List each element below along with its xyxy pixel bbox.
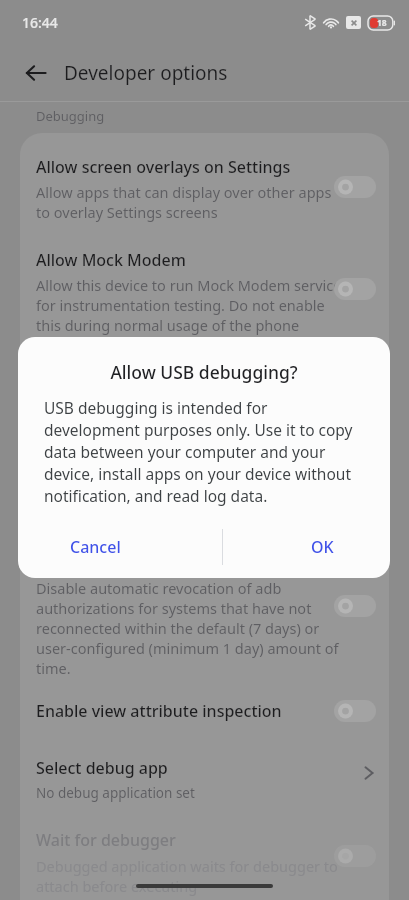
button[interactable]: Toggle xyxy=(334,176,376,198)
staticText: Disable automatic revocation of adb xyxy=(36,578,282,598)
staticText: 16:44 xyxy=(22,13,58,32)
button[interactable]: Toggle xyxy=(334,845,376,867)
button[interactable] xyxy=(20,688,389,734)
button[interactable]: Toggle xyxy=(334,278,376,300)
button[interactable]: Back xyxy=(14,51,58,95)
staticText: to overlay Settings screens xyxy=(36,202,218,222)
staticText: Allow this device to run Mock Modem serv… xyxy=(36,275,342,295)
staticText: 18 xyxy=(377,17,387,29)
staticText: for instrumentation testing. Do not enab… xyxy=(36,295,325,315)
button[interactable]: OK xyxy=(299,528,346,566)
button[interactable]: Toggle xyxy=(334,595,376,617)
button[interactable]: Cancel xyxy=(58,528,133,566)
staticText: reconnected within the default (7 days) … xyxy=(36,618,320,638)
staticText: Debugging xyxy=(36,107,105,125)
staticText: user-configured (minimum 1 day) amount o… xyxy=(36,638,339,658)
button[interactable] xyxy=(20,239,389,336)
staticText: Enable view attribute inspection xyxy=(36,700,282,722)
staticText: Cancel xyxy=(70,536,121,558)
staticText: Allow apps that can display over other a… xyxy=(36,182,332,202)
button[interactable]: Toggle xyxy=(334,700,376,722)
staticText: Debugged application waits for debugger … xyxy=(36,856,338,876)
staticText: Select debug app xyxy=(36,757,168,779)
staticText: Allow Mock Modem xyxy=(36,249,186,271)
staticText: Allow USB debugging? xyxy=(18,360,390,384)
staticText: authorizations for systems that have not xyxy=(36,598,312,618)
staticText: attach before executing xyxy=(36,876,198,896)
staticText: Developer options xyxy=(64,60,228,86)
staticText: Wait for debugger xyxy=(36,829,176,851)
staticText: Allow screen overlays on Settings xyxy=(36,156,291,178)
staticText: OK xyxy=(311,536,334,558)
button[interactable] xyxy=(20,146,389,222)
staticText: No debug application set xyxy=(36,784,195,802)
button[interactable] xyxy=(20,750,389,808)
staticText: USB debugging is intended for developmen… xyxy=(44,397,366,506)
staticText: time. xyxy=(36,658,71,678)
staticText: this during normal usage of the phone xyxy=(36,315,300,335)
